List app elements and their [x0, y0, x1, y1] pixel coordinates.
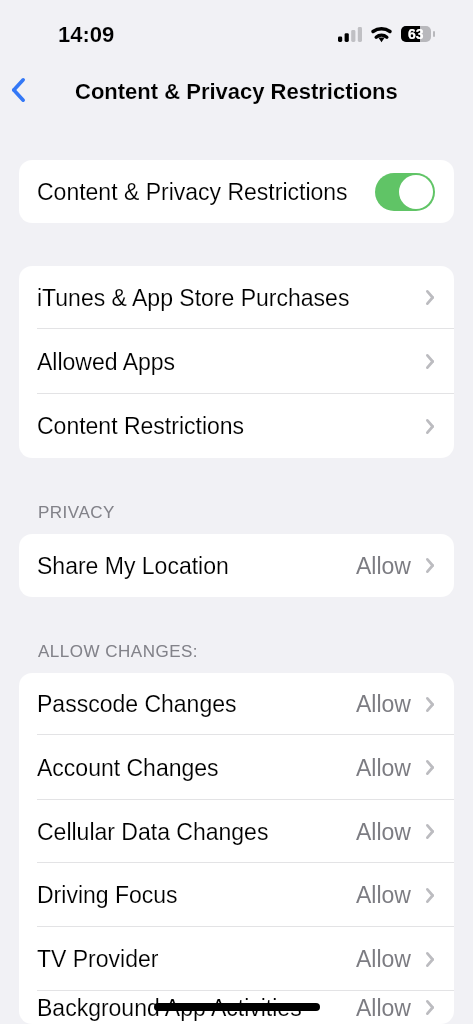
- staticText: Allow: [356, 882, 411, 908]
- button[interactable]: Content & Privacy Restrictions toggle: [375, 173, 435, 211]
- button[interactable]: TV Provider: [19, 927, 454, 991]
- staticText: 63: [408, 26, 424, 42]
- staticText: PRIVACY: [38, 503, 115, 522]
- staticText: Allow: [356, 995, 411, 1021]
- button[interactable]: Back: [0, 75, 36, 105]
- staticText: Background App Activities: [37, 995, 302, 1021]
- staticText: Content & Privacy Restrictions: [37, 179, 348, 205]
- staticText: iTunes & App Store Purchases: [37, 285, 350, 311]
- staticText: Driving Focus: [37, 882, 178, 908]
- staticText: Allowed Apps: [37, 349, 176, 375]
- staticText: Allow: [356, 691, 411, 717]
- button[interactable]: iTunes & App Store Purchases: [19, 266, 454, 329]
- staticText: Content & Privacy Restrictions: [75, 79, 398, 104]
- staticText: Allow: [356, 553, 411, 579]
- staticText: Allow: [356, 946, 411, 972]
- button[interactable]: Driving Focus: [19, 863, 454, 927]
- button[interactable]: Allowed Apps: [19, 329, 454, 394]
- button[interactable]: Passcode Changes: [19, 673, 454, 735]
- staticText: Cellular Data Changes: [37, 819, 269, 845]
- button[interactable]: Content & Privacy Restrictions: [19, 160, 454, 223]
- staticText: ALLOW CHANGES:: [38, 642, 199, 661]
- staticText: Account Changes: [37, 755, 219, 781]
- staticText: Content Restrictions: [37, 413, 245, 439]
- button[interactable]: Content Restrictions: [19, 394, 454, 458]
- staticText: 14:09: [58, 22, 115, 47]
- button[interactable]: Share My Location: [19, 534, 454, 597]
- button[interactable]: Background App Activities: [19, 991, 454, 1024]
- staticText: Passcode Changes: [37, 691, 237, 717]
- button[interactable]: Account Changes: [19, 735, 454, 800]
- staticText: Allow: [356, 755, 411, 781]
- staticText: TV Provider: [37, 946, 159, 972]
- button[interactable]: Cellular Data Changes: [19, 800, 454, 863]
- staticText: Allow: [356, 819, 411, 845]
- staticText: Share My Location: [37, 553, 229, 579]
